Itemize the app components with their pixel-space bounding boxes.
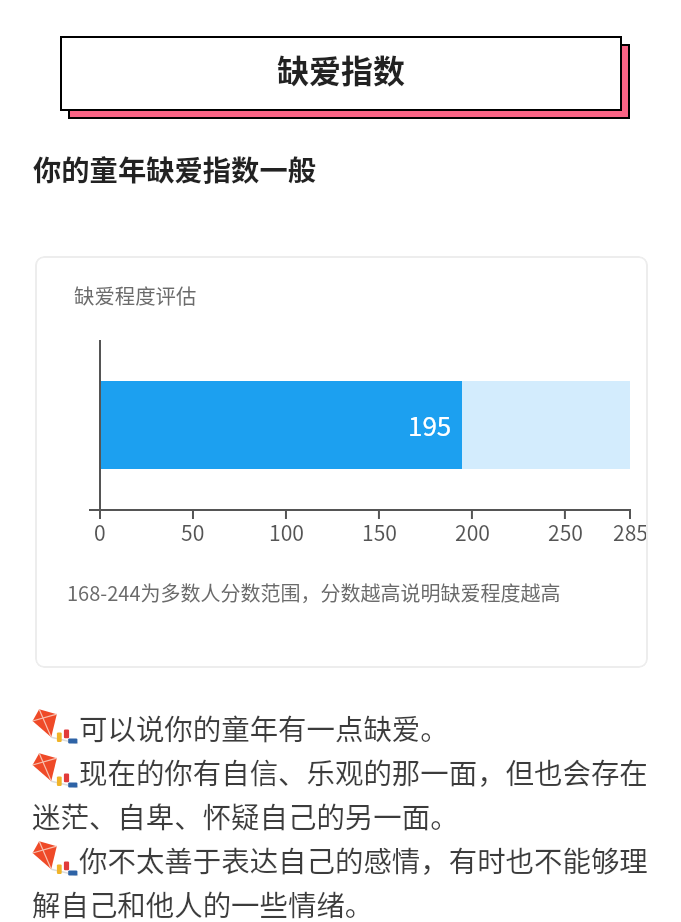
staticText: 缺爱程度评估 (74, 280, 197, 310)
button[interactable]: 缺爱指数 (60, 36, 622, 111)
staticText: 50 (181, 517, 205, 547)
staticText: 100 (269, 517, 304, 547)
staticText: 168-244为多数人分数范围，分数越高说明缺爱程度越高 (67, 578, 561, 607)
staticText: 0 (94, 517, 106, 547)
staticText: 你的童年缺爱指数一般 (33, 148, 316, 189)
staticText: 🪁可以说你的童年有一点缺爱。 🪁现在的你有自信、乐观的那一面，但也会存在迷茫、自… (32, 707, 648, 922)
staticText: 285 (613, 517, 648, 547)
other: kite (32, 751, 79, 793)
button[interactable]: 缺爱程度评估 (35, 256, 648, 668)
other: kite (32, 707, 79, 749)
other: kite (32, 839, 79, 881)
staticText: 150 (362, 517, 397, 547)
staticText: 250 (548, 517, 583, 547)
staticText: 195 (408, 406, 452, 444)
staticText: 缺爱指数 (277, 46, 406, 92)
staticText: 200 (455, 517, 490, 547)
